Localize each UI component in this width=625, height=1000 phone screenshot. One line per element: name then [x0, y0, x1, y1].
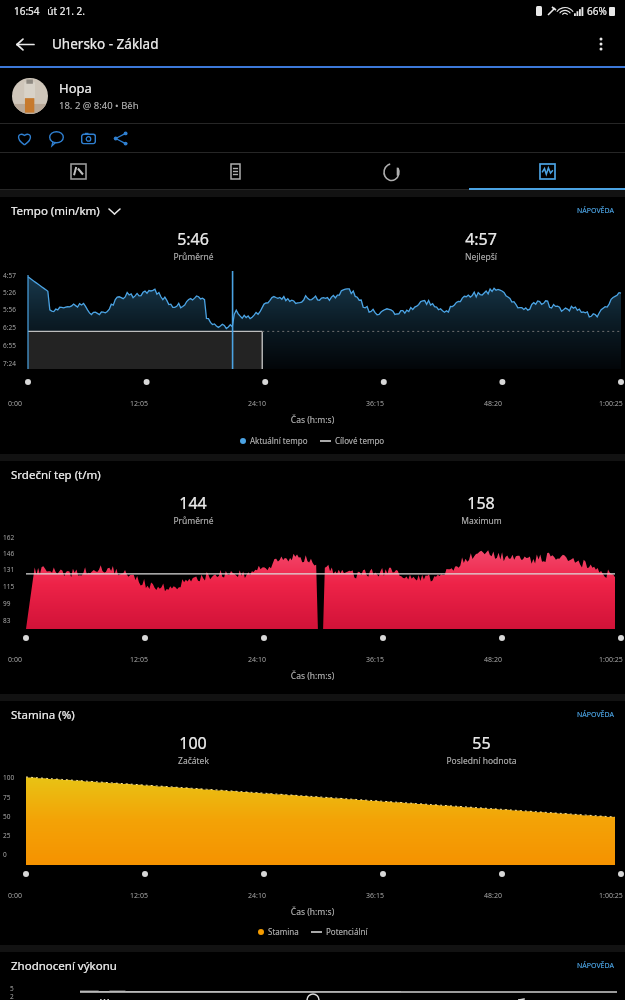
staticText: 48:20	[484, 399, 502, 409]
staticText: 7:24	[3, 359, 16, 368]
staticText: Uhersko - Základ	[52, 35, 159, 53]
staticText: 5:56	[3, 305, 16, 314]
button[interactable]: Charts	[469, 153, 625, 190]
staticText: Poslední hodnota	[446, 755, 517, 767]
staticText: 0:00	[8, 399, 22, 409]
staticText: 144	[179, 492, 207, 514]
staticText: 115	[3, 582, 15, 591]
staticText: Srdeční tep (t/m)	[11, 467, 101, 483]
staticText: 66%	[587, 4, 607, 18]
staticText: 12:05	[130, 655, 148, 665]
staticText: 83	[3, 616, 11, 625]
staticText: 24:10	[248, 891, 266, 901]
staticText: Hopa	[59, 79, 92, 97]
staticText: 75	[3, 793, 11, 802]
staticText: 2	[10, 992, 14, 1000]
staticText: Průměrné	[173, 251, 214, 263]
staticText: 0:00	[8, 655, 22, 665]
button[interactable]: Map	[0, 153, 157, 190]
staticText: 6:25	[3, 323, 16, 332]
button[interactable]: NÁPOVĚDA	[577, 710, 614, 720]
staticText: Průměrné	[173, 515, 214, 527]
staticText: 6:55	[3, 341, 16, 350]
button[interactable]: Like	[8, 124, 40, 152]
staticText: 48:20	[484, 891, 502, 901]
button[interactable]: NÁPOVĚDA	[577, 961, 614, 971]
staticText: 48:20	[484, 655, 502, 665]
button[interactable]: Photo	[72, 124, 104, 152]
button[interactable]: Details	[157, 153, 313, 190]
staticText: Čas (h:m:s)	[0, 906, 625, 918]
button[interactable]: Share	[104, 124, 136, 152]
button[interactable]: More options	[583, 26, 619, 62]
staticText: Zhodnocení výkonu	[11, 958, 117, 974]
staticText: Maximum	[461, 515, 502, 527]
staticText: Čas (h:m:s)	[0, 414, 625, 426]
staticText: 146	[3, 549, 15, 558]
staticText: 5:46	[177, 228, 209, 250]
staticText: Čas (h:m:s)	[0, 670, 625, 682]
staticText: 4:57	[465, 228, 497, 250]
staticText: 36:15	[366, 399, 384, 409]
staticText: 24:10	[248, 655, 266, 665]
staticText: 1:00:25	[599, 399, 623, 409]
staticText: Potenciální	[326, 926, 368, 937]
staticText: 0	[3, 850, 7, 859]
staticText: 16:54 út 21. 2.	[14, 4, 85, 18]
staticText: 5	[10, 984, 14, 992]
staticText: 18. 2 @ 8:40 • Běh	[59, 99, 139, 112]
staticText: Tempo (min/km)	[11, 203, 100, 219]
staticText: 55	[472, 732, 491, 754]
staticText: Stamina (%)	[11, 707, 75, 723]
staticText: 25	[3, 831, 11, 840]
staticText: Nejlepší	[465, 251, 497, 263]
button[interactable]: Hopa	[0, 68, 625, 123]
staticText: Cílové tempo	[335, 435, 385, 446]
staticText: 12:05	[130, 399, 148, 409]
staticText: 50	[3, 812, 11, 821]
staticText: 100	[179, 732, 207, 754]
button[interactable]: Comment	[40, 124, 72, 152]
staticText: 131	[3, 565, 15, 574]
staticText: Začátek	[178, 755, 209, 767]
button[interactable]: Tempo (min/km)	[11, 203, 120, 219]
button[interactable]: Back	[6, 26, 42, 62]
staticText: Aktuální tempo	[250, 435, 308, 446]
staticText: 5:26	[3, 288, 16, 297]
staticText: 12:05	[130, 891, 148, 901]
button[interactable]: Laps	[313, 153, 469, 190]
staticText: 24:10	[248, 399, 266, 409]
button[interactable]: NÁPOVĚDA	[577, 206, 614, 216]
staticText: 36:15	[366, 891, 384, 901]
staticText: 36:15	[366, 655, 384, 665]
staticText: 158	[467, 492, 495, 514]
staticText: 1:00:25	[599, 891, 623, 901]
staticText: 4:57	[3, 271, 16, 280]
staticText: 0:00	[8, 891, 22, 901]
staticText: 99	[3, 599, 11, 608]
staticText: 162	[3, 533, 15, 542]
staticText: 1:00:25	[599, 655, 623, 665]
staticText: 100	[3, 773, 15, 782]
staticText: Stamina	[268, 926, 299, 937]
